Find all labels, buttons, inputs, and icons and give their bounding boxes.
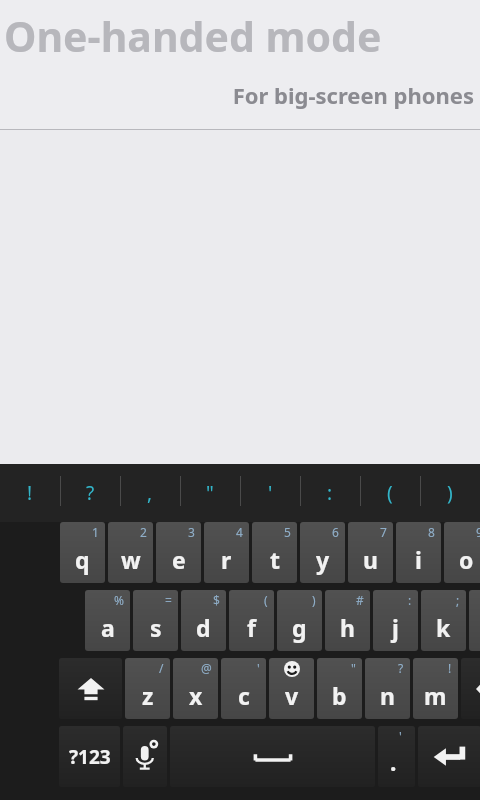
staticText: ": [206, 480, 214, 506]
button[interactable]: Voice input: [123, 726, 167, 787]
button[interactable]: 8: [396, 522, 441, 583]
button[interactable]: 2: [108, 522, 153, 583]
staticText: ': [257, 660, 260, 676]
staticText: (: [387, 480, 393, 506]
button[interactable]: !: [413, 658, 458, 719]
staticText: One-handed mode: [4, 8, 382, 64]
button[interactable]: ): [277, 590, 322, 651]
staticText: ,: [147, 480, 153, 506]
staticText: :: [327, 480, 333, 506]
staticText: =: [165, 592, 172, 608]
staticText: !: [448, 660, 452, 676]
staticText: !: [27, 480, 33, 506]
button[interactable]: #: [325, 590, 370, 651]
staticText: %: [114, 592, 124, 608]
staticText: ': [399, 728, 402, 744]
staticText: 3: [188, 524, 195, 540]
button[interactable]: 6: [300, 522, 345, 583]
staticText: 6: [332, 524, 339, 540]
staticText: q: [75, 544, 90, 575]
staticText: ?: [86, 480, 95, 506]
staticText: k: [436, 612, 451, 643]
button[interactable]: 7: [348, 522, 393, 583]
staticText: ): [447, 480, 453, 506]
button[interactable]: ": [317, 658, 362, 719]
staticText: ?123: [69, 744, 111, 770]
staticText: 8: [428, 524, 435, 540]
button[interactable]: 1: [60, 522, 105, 583]
staticText: 4: [236, 524, 243, 540]
staticText: @: [201, 660, 212, 676]
button[interactable]: v: [269, 658, 314, 719]
staticText: ": [351, 660, 356, 676]
button[interactable]: Space: [170, 726, 375, 787]
button[interactable]: ?: [60, 464, 120, 522]
staticText: u: [363, 544, 378, 575]
button[interactable]: =: [133, 590, 178, 651]
button[interactable]: Shift: [59, 658, 122, 719]
button[interactable]: /: [125, 658, 170, 719]
button[interactable]: ': [240, 464, 300, 522]
staticText: s: [150, 612, 162, 643]
staticText: (: [264, 592, 268, 608]
button[interactable]: @: [173, 658, 218, 719]
button[interactable]: (: [360, 464, 420, 522]
button[interactable]: :: [300, 464, 360, 522]
button[interactable]: 3: [156, 522, 201, 583]
staticText: c: [238, 680, 250, 711]
staticText: /: [159, 660, 164, 676]
button[interactable]: !: [0, 464, 60, 522]
button[interactable]: ?123: [59, 726, 120, 787]
button[interactable]: -: [469, 590, 480, 651]
staticText: o: [459, 544, 474, 575]
button[interactable]: ': [378, 726, 415, 787]
staticText: a: [101, 612, 115, 643]
button[interactable]: :: [373, 590, 418, 651]
staticText: ?: [398, 660, 404, 676]
button[interactable]: ": [180, 464, 240, 522]
staticText: w: [121, 544, 141, 575]
staticText: n: [380, 680, 395, 711]
staticText: m: [424, 680, 447, 711]
button[interactable]: 9: [444, 522, 480, 583]
button[interactable]: ': [221, 658, 266, 719]
button[interactable]: ?: [365, 658, 410, 719]
staticText: 9: [476, 524, 480, 540]
button[interactable]: 4: [204, 522, 249, 583]
button[interactable]: ): [420, 464, 480, 522]
staticText: e: [172, 544, 186, 575]
staticText: ;: [456, 592, 460, 608]
staticText: t: [270, 544, 280, 575]
button[interactable]: Backspace: [461, 658, 480, 719]
staticText: r: [221, 544, 232, 575]
staticText: 1: [92, 524, 99, 540]
staticText: b: [332, 680, 347, 711]
staticText: ': [268, 480, 273, 506]
button[interactable]: Enter: [418, 726, 480, 787]
staticText: :: [408, 592, 412, 608]
staticText: 7: [380, 524, 387, 540]
staticText: $: [213, 592, 220, 608]
button[interactable]: %: [85, 590, 130, 651]
button[interactable]: 5: [252, 522, 297, 583]
button[interactable]: ;: [421, 590, 466, 651]
staticText: .: [390, 746, 397, 777]
staticText: x: [189, 680, 203, 711]
staticText: i: [415, 544, 422, 575]
button[interactable]: (: [229, 590, 274, 651]
staticText: f: [247, 612, 256, 643]
staticText: y: [316, 544, 330, 575]
staticText: j: [392, 612, 399, 643]
staticText: 2: [140, 524, 147, 540]
staticText: d: [196, 612, 211, 643]
staticText: z: [142, 680, 154, 711]
staticText: #: [356, 592, 364, 608]
button[interactable]: ,: [120, 464, 180, 522]
staticText: 5: [284, 524, 291, 540]
staticText: For big-screen phones: [0, 80, 474, 112]
staticText: ): [312, 592, 316, 608]
staticText: v: [285, 680, 299, 711]
staticText: g: [292, 612, 307, 643]
button[interactable]: $: [181, 590, 226, 651]
staticText: h: [340, 612, 355, 643]
